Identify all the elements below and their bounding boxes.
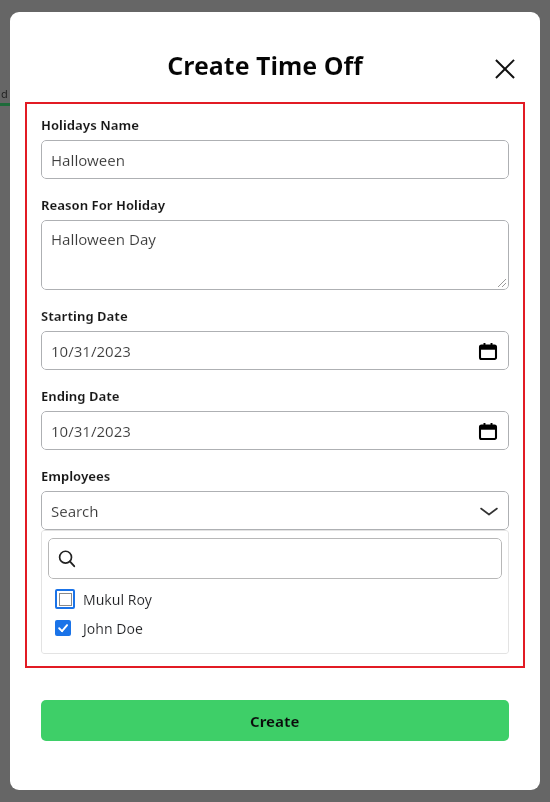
staticText: Search <box>51 501 99 521</box>
staticText: Mukul Roy <box>83 590 152 609</box>
button[interactable]: Search <box>41 491 509 530</box>
button[interactable]: Search employees <box>48 538 502 579</box>
staticText: Starting Date <box>41 307 128 325</box>
staticText: Ending Date <box>41 387 120 405</box>
staticText: Reason For Holiday <box>41 196 166 214</box>
staticText: Create Time Off <box>167 48 363 82</box>
staticText: Halloween <box>51 150 126 170</box>
staticText: d <box>1 86 8 101</box>
staticText: Create <box>250 711 300 731</box>
staticText: 10/31/2023 <box>51 421 131 441</box>
button[interactable]: Close <box>490 54 520 84</box>
staticText: John Doe <box>83 619 143 638</box>
staticText: 10/31/2023 <box>51 341 131 361</box>
button[interactable]: Halloween Day <box>41 220 509 290</box>
button[interactable]: John Doe <box>48 615 502 641</box>
button[interactable]: Create <box>41 700 509 741</box>
staticText: Holidays Name <box>41 116 139 134</box>
button[interactable]: 10/31/2023 <box>41 331 509 370</box>
button[interactable]: Mukul Roy <box>48 586 502 612</box>
staticText: Employees <box>41 467 111 485</box>
button[interactable]: Halloween <box>41 140 509 179</box>
button[interactable]: 10/31/2023 <box>41 411 509 450</box>
staticText: Halloween Day <box>51 229 156 249</box>
